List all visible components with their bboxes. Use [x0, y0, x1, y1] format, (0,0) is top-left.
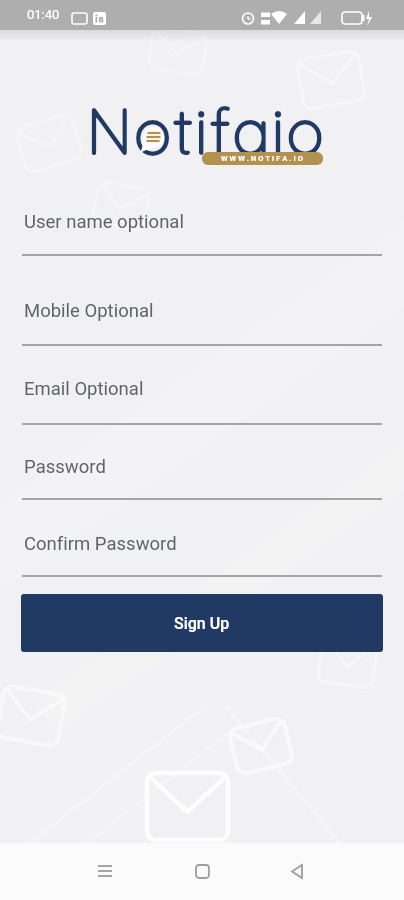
- staticText: Email Optional: [24, 378, 144, 400]
- staticText: Password: [24, 456, 106, 478]
- staticText: Confirm Password: [24, 533, 177, 555]
- button[interactable]: [85, 853, 125, 893]
- button[interactable]: User name optional: [22, 205, 382, 261]
- button[interactable]: Sign Up: [21, 594, 383, 652]
- staticText: Sign Up: [174, 614, 230, 633]
- button[interactable]: [277, 853, 317, 893]
- staticText: User name optional: [24, 211, 184, 233]
- button[interactable]: [182, 853, 222, 893]
- staticText: Notifaio: [4, 91, 404, 170]
- staticText: Mobile Optional: [24, 300, 154, 322]
- staticText: WWW.NOTIFA.IO: [221, 154, 305, 163]
- button[interactable]: Password: [22, 450, 382, 506]
- button[interactable]: Mobile Optional: [22, 294, 382, 350]
- button[interactable]: Confirm Password: [22, 527, 382, 583]
- button[interactable]: Email Optional: [22, 372, 382, 428]
- staticText: 01:40: [27, 7, 60, 22]
